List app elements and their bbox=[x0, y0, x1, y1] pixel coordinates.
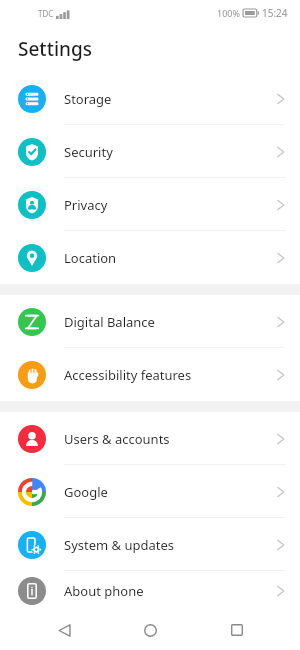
button[interactable]: About phone bbox=[0, 571, 300, 610]
staticText: TDC bbox=[38, 8, 54, 19]
staticText: Privacy bbox=[64, 196, 276, 214]
staticText: Users & accounts bbox=[64, 430, 276, 448]
button[interactable]: Digital Balance bbox=[0, 295, 300, 348]
button[interactable]: Google bbox=[0, 465, 300, 518]
staticText: System & updates bbox=[64, 536, 276, 554]
button[interactable]: Back bbox=[41, 610, 87, 650]
staticText: Accessibility features bbox=[64, 366, 276, 384]
button[interactable]: Storage bbox=[0, 72, 300, 125]
button[interactable]: Recent apps bbox=[214, 610, 260, 650]
staticText: Google bbox=[64, 483, 276, 501]
staticText: Security bbox=[64, 143, 276, 161]
staticText: Digital Balance bbox=[64, 313, 276, 331]
staticText: Storage bbox=[64, 90, 276, 108]
staticText: Location bbox=[64, 249, 276, 267]
staticText: Settings bbox=[18, 36, 92, 62]
button[interactable]: System & updates bbox=[0, 518, 300, 571]
button[interactable]: Privacy bbox=[0, 178, 300, 231]
staticText: 100% bbox=[217, 7, 240, 19]
button[interactable]: Security bbox=[0, 125, 300, 178]
button[interactable]: Users & accounts bbox=[0, 412, 300, 465]
staticText: About phone bbox=[64, 582, 276, 600]
button[interactable]: Accessibility features bbox=[0, 348, 300, 401]
staticText: 15:24 bbox=[262, 6, 288, 20]
button[interactable]: Location bbox=[0, 231, 300, 284]
button[interactable]: Home bbox=[127, 610, 173, 650]
